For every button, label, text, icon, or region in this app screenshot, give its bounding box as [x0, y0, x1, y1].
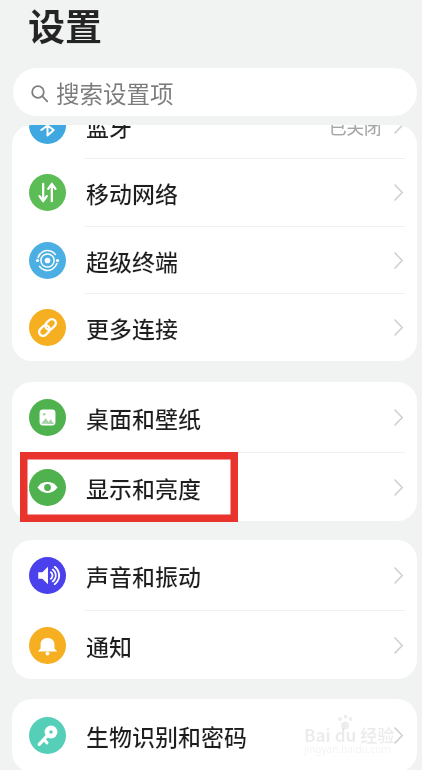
staticText: jingyan.baidu.com [304, 742, 391, 756]
staticText: 更多连接 [86, 311, 178, 344]
staticText: 生物识别和密码 [86, 719, 247, 752]
button[interactable]: 桌面和壁纸 [12, 382, 417, 452]
other: Search [32, 87, 50, 105]
button[interactable]: 更多连接 [12, 293, 417, 361]
staticText: 设置 [28, 0, 102, 52]
staticText: 蓝牙 [86, 125, 132, 142]
button[interactable]: 生物识别和密码 [12, 699, 417, 770]
staticText: 移动网络 [86, 176, 178, 209]
button[interactable]: 蓝牙 [12, 125, 417, 159]
staticText: 桌面和壁纸 [86, 401, 201, 434]
button[interactable]: 移动网络 [12, 158, 417, 226]
button[interactable]: Search [13, 68, 417, 116]
button[interactable]: 声音和振动 [12, 540, 417, 610]
staticText: 声音和振动 [86, 559, 201, 592]
staticText: Bai du 经验 [304, 722, 395, 747]
staticText: 超级终端 [86, 244, 178, 277]
staticText: 显示和亮度 [86, 471, 201, 504]
button[interactable]: 超级终端 [12, 226, 417, 294]
button[interactable]: 通知 [12, 610, 417, 679]
button[interactable]: 显示和亮度 [12, 452, 417, 521]
staticText: 已关闭 [329, 125, 382, 139]
staticText: 通知 [86, 629, 132, 662]
staticText: 搜索设置项 [56, 76, 174, 110]
